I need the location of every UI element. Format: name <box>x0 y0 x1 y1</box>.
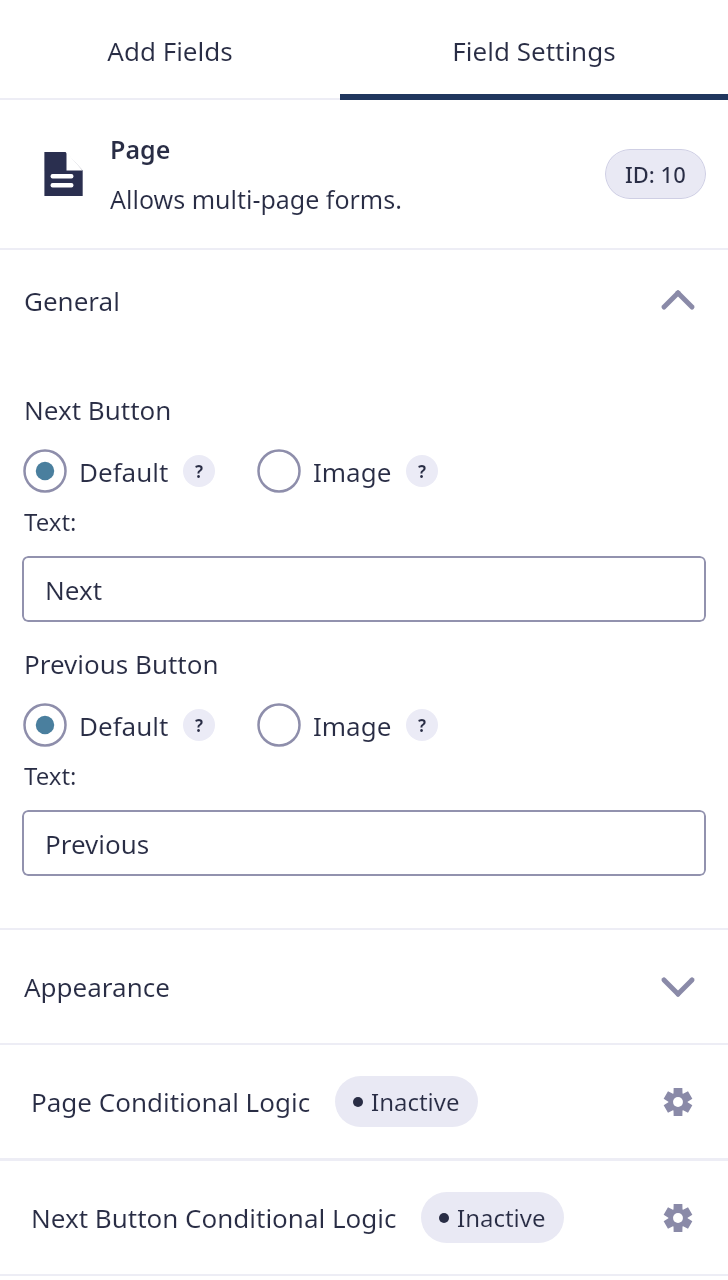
staticText: Add Fields <box>107 33 233 68</box>
button[interactable]: General <box>0 250 728 350</box>
staticText: Image <box>313 454 392 489</box>
staticText: Next <box>45 572 103 607</box>
button[interactable]: Default <box>23 449 215 493</box>
staticText: Default <box>79 708 169 743</box>
staticText: ? <box>418 714 427 737</box>
button[interactable]: Next Button Conditional Logic <box>0 1161 728 1274</box>
button[interactable]: Settings <box>660 1084 696 1120</box>
button[interactable]: Image <box>257 449 438 493</box>
staticText: ? <box>418 460 427 483</box>
button[interactable]: Appearance <box>0 930 728 1043</box>
button[interactable]: Help <box>183 709 215 741</box>
staticText: Text: <box>24 759 77 792</box>
button[interactable]: Next <box>22 556 706 622</box>
button[interactable]: Collapse <box>656 278 700 322</box>
staticText: Previous <box>45 826 150 861</box>
button[interactable]: Page Conditional Logic <box>0 1045 728 1158</box>
staticText: Previous Button <box>24 646 219 681</box>
staticText: Image <box>313 708 392 743</box>
staticText: General <box>24 283 120 318</box>
staticText: Default <box>79 454 169 489</box>
staticText: ? <box>195 714 204 737</box>
staticText: Page <box>110 132 171 166</box>
button[interactable]: Field Settings <box>340 0 728 100</box>
button[interactable]: Previous <box>22 810 706 876</box>
staticText: Next Button <box>24 392 172 427</box>
staticText: Field Settings <box>452 33 616 68</box>
button[interactable]: Default <box>23 703 215 747</box>
staticText: Inactive <box>457 1201 546 1234</box>
staticText: Appearance <box>24 969 170 1004</box>
staticText: Allows multi-page forms. <box>110 182 402 216</box>
button[interactable]: Help <box>406 709 438 741</box>
button[interactable]: Expand <box>656 965 700 1009</box>
button[interactable]: Help <box>406 455 438 487</box>
staticText: ID: 10 <box>625 159 686 189</box>
button[interactable]: Image <box>257 703 438 747</box>
button[interactable]: ID: 10 <box>605 149 706 199</box>
button[interactable]: Add Fields <box>0 0 340 100</box>
button[interactable]: Page <box>0 100 728 248</box>
staticText: Page Conditional Logic <box>31 1084 311 1119</box>
staticText: Next Button Conditional Logic <box>31 1200 397 1235</box>
staticText: Inactive <box>371 1085 460 1118</box>
staticText: ? <box>195 460 204 483</box>
button[interactable]: Help <box>183 455 215 487</box>
button[interactable]: Settings <box>660 1200 696 1236</box>
staticText: Text: <box>24 505 77 538</box>
